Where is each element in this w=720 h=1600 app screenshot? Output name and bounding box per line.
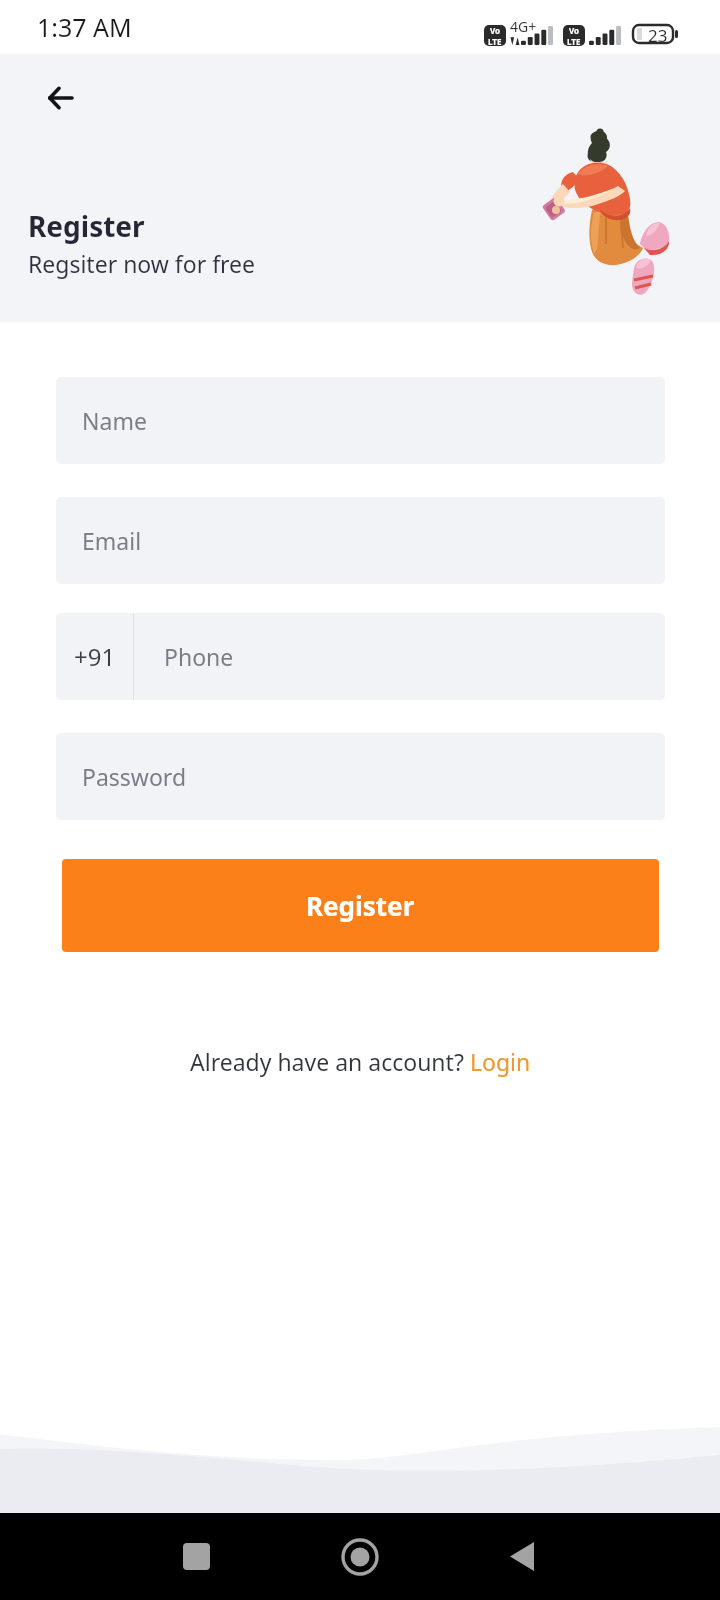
staticText: LTE: [488, 36, 502, 46]
staticText: +91: [74, 640, 116, 673]
button[interactable]: Home: [316, 1513, 403, 1600]
staticText: LTE: [567, 36, 581, 46]
staticText: Regsiter now for free: [28, 248, 256, 279]
button[interactable]: Back: [26, 64, 94, 132]
staticText: Login: [470, 1046, 531, 1077]
staticText: Already have an account?: [190, 1046, 470, 1077]
button[interactable]: Back: [478, 1513, 565, 1600]
staticText: 1:37 AM: [37, 10, 132, 44]
staticText: Password: [82, 761, 187, 792]
staticText: Vo: [569, 25, 580, 36]
button[interactable]: +91: [56, 613, 133, 700]
button[interactable]: Password: [56, 733, 665, 820]
button[interactable]: Already have an account?: [190, 1046, 531, 1077]
button[interactable]: Email: [56, 497, 665, 584]
button[interactable]: Register: [62, 859, 659, 952]
staticText: Email: [82, 525, 142, 556]
staticText: Phone: [164, 641, 234, 672]
staticText: Vo: [490, 25, 501, 36]
button[interactable]: Recent apps: [153, 1513, 240, 1600]
staticText: Register: [306, 888, 415, 923]
staticText: 4G+: [510, 17, 537, 36]
button[interactable]: Phone: [134, 613, 665, 700]
staticText: Name: [82, 405, 147, 436]
staticText: Register: [28, 207, 145, 245]
staticText: 23: [648, 24, 668, 44]
button[interactable]: Name: [56, 377, 665, 464]
